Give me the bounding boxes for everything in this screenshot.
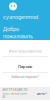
staticText: Имя пользователя: [8, 48, 41, 53]
staticText: >: [45, 92, 47, 95]
staticText: Пароль: [18, 64, 32, 69]
button[interactable]: ИНСТРУКЦИЯ ПО ВОССТАНОВЛЕНИЮ: [2, 88, 27, 99]
button[interactable]: Забыли пароль?: [11, 74, 39, 79]
staticText: ИНСТРУКЦИЯ ПО ВОССТАНОВЛЕНИЮ: [2, 88, 27, 99]
staticText: Добро пожаловать: [3, 25, 33, 40]
staticText: cyanogenmod: [3, 13, 38, 20]
staticText: Забыли пароль?: [11, 74, 39, 79]
button[interactable]: ДАЛЕЕ: [36, 92, 47, 95]
staticText: ДАЛЕЕ: [36, 92, 44, 95]
